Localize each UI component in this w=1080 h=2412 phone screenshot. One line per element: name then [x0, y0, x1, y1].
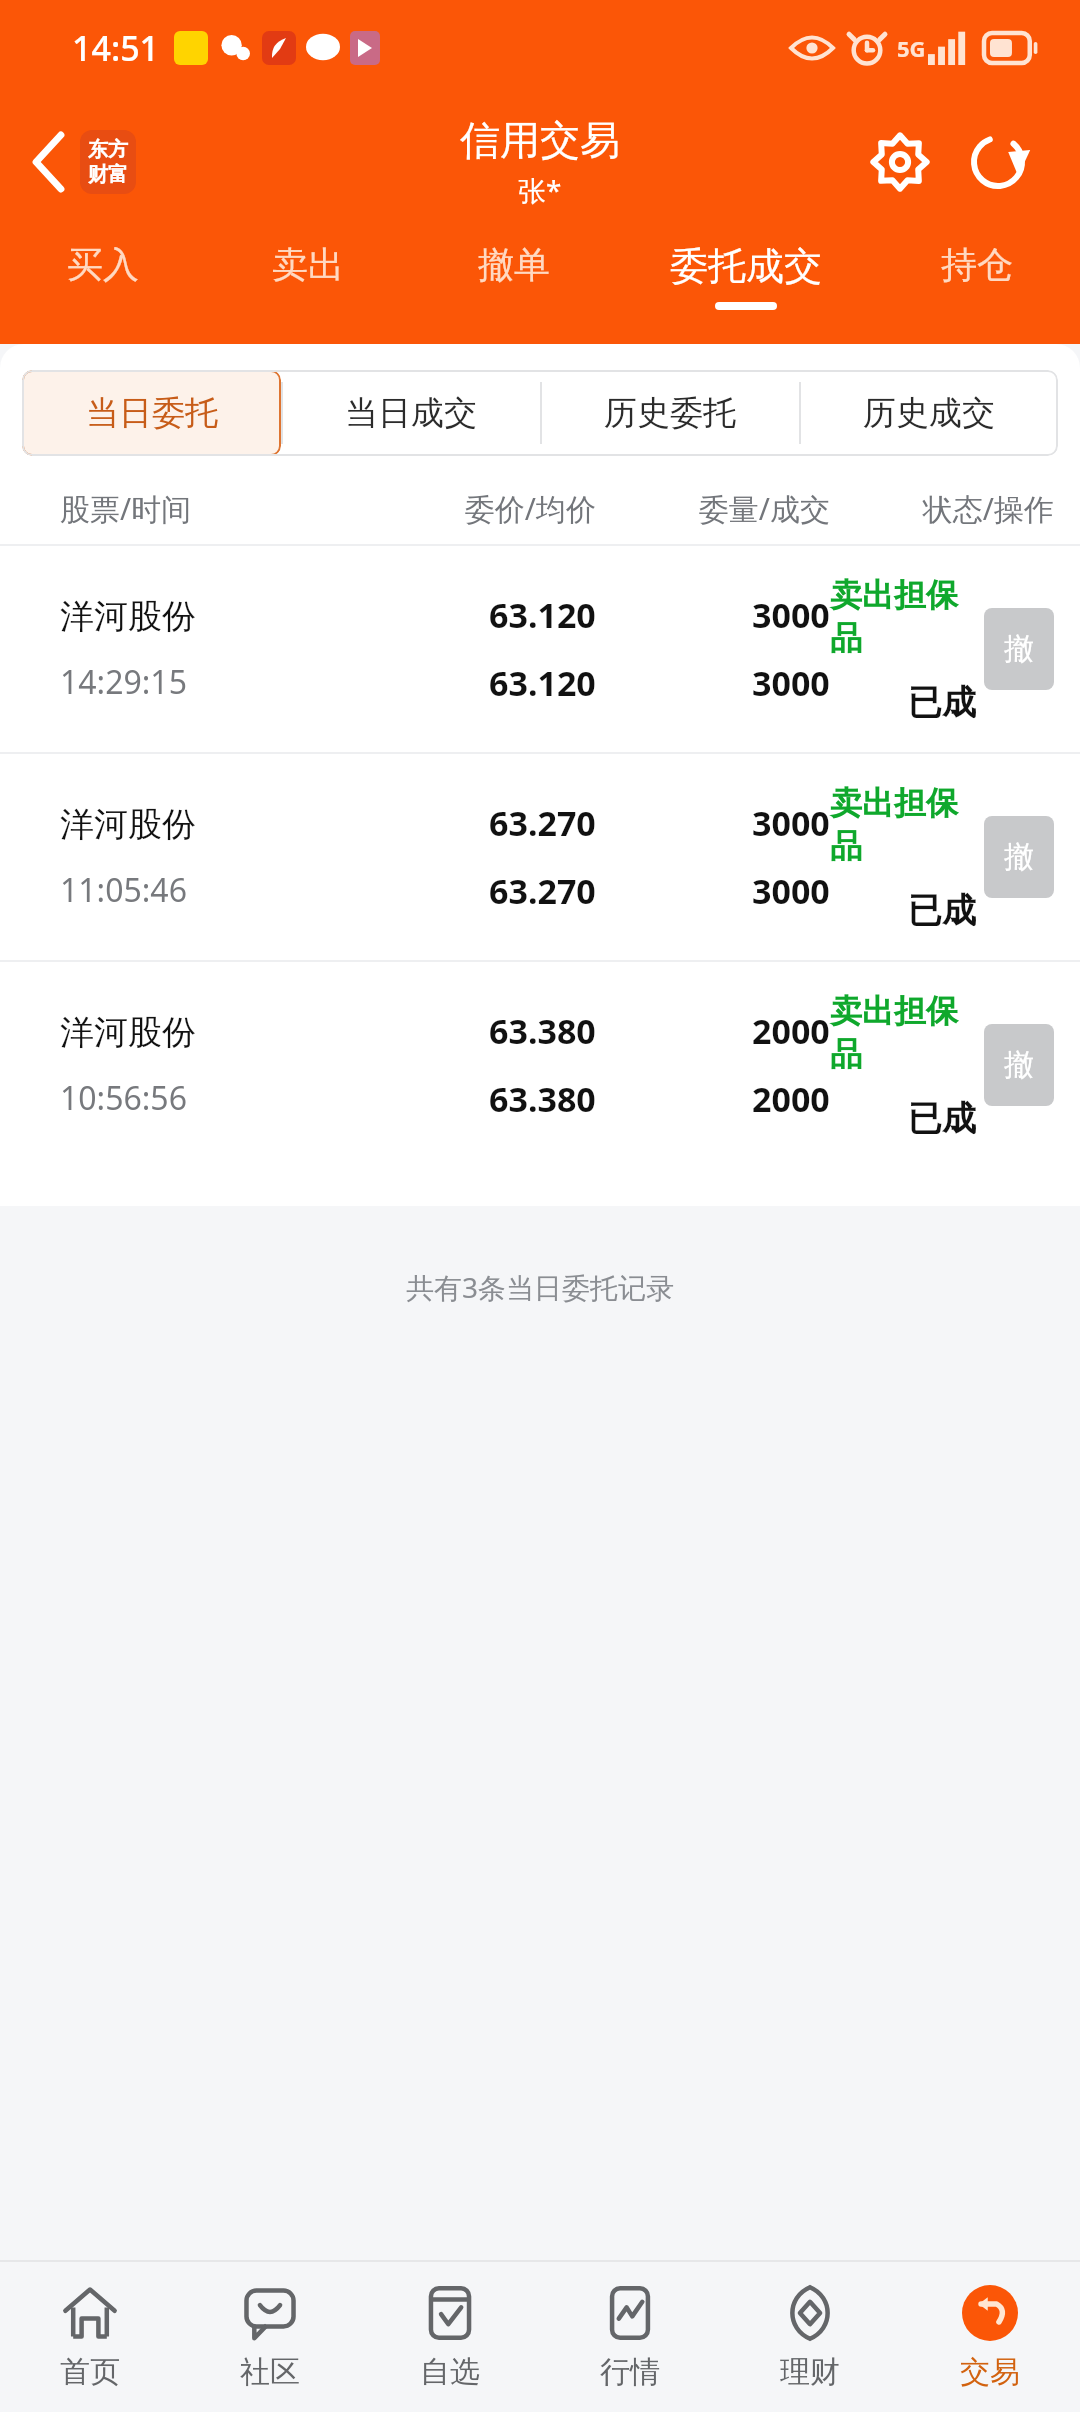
- staticText: 14:29:15: [60, 660, 187, 704]
- button[interactable]: 撤单: [411, 228, 617, 332]
- button[interactable]: 撤: [984, 816, 1054, 898]
- staticText: 卖出担保品: [830, 783, 976, 867]
- staticText: 3000: [752, 800, 830, 846]
- button[interactable]: 返回 东方财富: [22, 122, 146, 202]
- staticText: 已成: [908, 681, 976, 724]
- staticText: 历史委托: [604, 392, 736, 434]
- staticText: 洋河股份: [60, 803, 196, 846]
- staticText: 洋河股份: [60, 1011, 196, 1054]
- staticText: 行情: [600, 2353, 660, 2391]
- staticText: 委量/成交: [596, 488, 830, 529]
- button[interactable]: 撤: [984, 1024, 1054, 1106]
- staticText: 10:56:56: [60, 1076, 187, 1120]
- staticText: 63.380: [489, 1008, 596, 1054]
- button[interactable]: 当日委托: [22, 370, 281, 456]
- staticText: 63.120: [489, 592, 596, 638]
- button[interactable]: 历史成交: [799, 370, 1058, 456]
- staticText: 委托成交: [670, 242, 822, 290]
- staticText: 11:05:46: [60, 868, 187, 912]
- staticText: 股票/时间: [60, 488, 352, 529]
- staticText: 63.270: [489, 868, 596, 914]
- button[interactable]: 洋河股份: [0, 962, 1080, 1168]
- staticText: 共有3条当日委托记录: [0, 1268, 1080, 1306]
- staticText: 卖出担保品: [830, 991, 976, 1075]
- staticText: 已成: [908, 889, 976, 932]
- staticText: 首页: [60, 2353, 120, 2391]
- staticText: 当日委托: [86, 392, 218, 434]
- button[interactable]: 首页: [0, 2262, 180, 2412]
- staticText: 撤: [1004, 630, 1034, 668]
- staticText: 63.120: [489, 660, 596, 706]
- button[interactable]: 行情: [540, 2262, 720, 2412]
- staticText: 2000: [752, 1076, 830, 1122]
- button[interactable]: 洋河股份: [0, 546, 1080, 752]
- staticText: 撤单: [478, 242, 550, 287]
- button[interactable]: 委托成交: [617, 228, 874, 332]
- staticText: 历史成交: [863, 392, 995, 434]
- staticText: 撤: [1004, 1046, 1034, 1084]
- button[interactable]: 理财: [720, 2262, 900, 2412]
- button[interactable]: 持仓: [874, 228, 1080, 332]
- button[interactable]: 洋河股份: [0, 754, 1080, 960]
- staticText: 卖出担保品: [830, 575, 976, 659]
- staticText: 自选: [420, 2353, 480, 2391]
- button[interactable]: 卖出: [205, 228, 411, 332]
- staticText: 状态/操作: [830, 488, 1054, 529]
- staticText: 3000: [752, 868, 830, 914]
- staticText: 委价/均价: [352, 488, 596, 529]
- staticText: 63.270: [489, 800, 596, 846]
- staticText: 3000: [752, 660, 830, 706]
- button[interactable]: 买入: [0, 228, 205, 332]
- staticText: 14:51: [72, 25, 160, 71]
- button[interactable]: 交易: [900, 2262, 1080, 2412]
- staticText: 买入: [67, 242, 139, 287]
- button[interactable]: 历史委托: [540, 370, 799, 456]
- staticText: 持仓: [941, 242, 1013, 287]
- staticText: 交易: [960, 2353, 1020, 2391]
- button[interactable]: 撤: [984, 608, 1054, 690]
- staticText: 信用交易: [460, 115, 620, 165]
- staticText: 东方: [88, 137, 128, 162]
- staticText: 已成: [908, 1097, 976, 1140]
- button[interactable]: 当日成交: [281, 370, 540, 456]
- staticText: 社区: [240, 2353, 300, 2391]
- button[interactable]: 设置: [858, 120, 942, 204]
- staticText: 5G: [897, 33, 926, 63]
- button[interactable]: 刷新: [956, 120, 1040, 204]
- staticText: 当日成交: [345, 392, 477, 434]
- button[interactable]: 自选: [360, 2262, 540, 2412]
- staticText: 理财: [780, 2353, 840, 2391]
- staticText: 撤: [1004, 838, 1034, 876]
- button[interactable]: 社区: [180, 2262, 360, 2412]
- staticText: 财富: [88, 162, 128, 187]
- staticText: 洋河股份: [60, 595, 196, 638]
- staticText: 张*: [518, 171, 562, 209]
- staticText: 3000: [752, 592, 830, 638]
- staticText: 63.380: [489, 1076, 596, 1122]
- staticText: 2000: [752, 1008, 830, 1054]
- staticText: 卖出: [272, 242, 344, 287]
